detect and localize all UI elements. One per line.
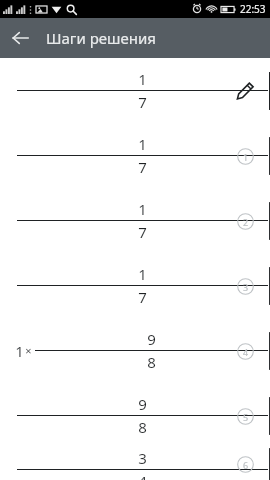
button[interactable]: 1 <box>0 123 270 188</box>
staticText: 4 <box>138 471 147 480</box>
button[interactable]: 4 <box>228 334 262 368</box>
staticText: Шаги решения <box>46 28 156 48</box>
button[interactable]: 3 <box>0 448 270 480</box>
staticText: 2 <box>243 216 249 228</box>
button[interactable]: 6 <box>228 448 262 480</box>
staticText: 1 <box>138 134 147 154</box>
staticText: 9 <box>147 329 156 349</box>
button[interactable]: 1 <box>228 139 262 173</box>
staticText: 7 <box>138 287 147 307</box>
button[interactable]: Back <box>0 18 40 58</box>
staticText: 8 <box>138 417 147 437</box>
button[interactable]: 1 <box>0 188 270 253</box>
button[interactable]: 2 <box>228 204 262 238</box>
button[interactable]: 1 <box>0 253 270 318</box>
staticText: 1 <box>15 341 24 361</box>
staticText: 3 <box>243 281 249 293</box>
staticText: 5 <box>243 411 249 423</box>
staticText: 1 <box>243 151 249 163</box>
button[interactable]: 1 <box>0 58 270 123</box>
button[interactable]: 3 <box>228 269 262 303</box>
staticText: 3 <box>138 448 147 468</box>
staticText: 8 <box>147 352 156 372</box>
button[interactable]: 1 <box>0 318 270 383</box>
button[interactable]: 5 <box>228 399 262 433</box>
staticText: 7 <box>138 92 147 112</box>
staticText: 1 <box>138 69 147 89</box>
staticText: 1 <box>138 199 147 219</box>
staticText: 4 <box>243 346 249 358</box>
staticText: × <box>25 343 32 358</box>
staticText: 7 <box>138 157 147 177</box>
staticText: 9 <box>138 394 147 414</box>
button[interactable]: 9 <box>0 383 270 448</box>
staticText: 7 <box>138 222 147 242</box>
staticText: 6 <box>243 459 249 471</box>
staticText: 1 <box>138 264 147 284</box>
staticText: 22:53 <box>240 2 266 16</box>
button[interactable]: Edit equation <box>228 74 262 108</box>
